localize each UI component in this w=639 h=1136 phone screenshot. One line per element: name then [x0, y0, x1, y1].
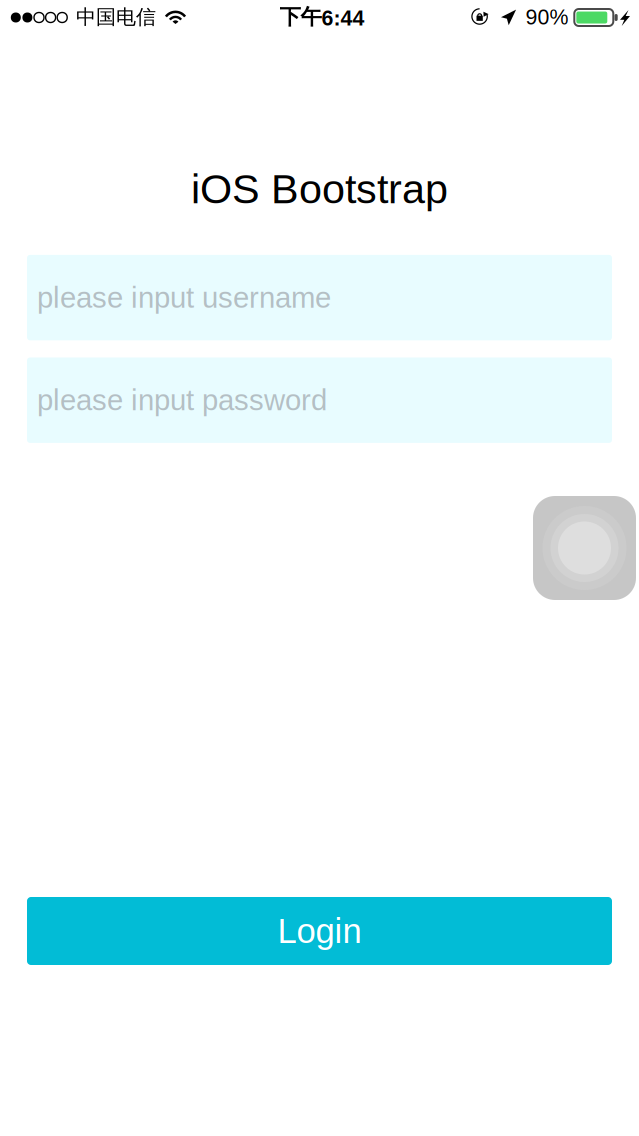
staticText: Login [277, 912, 361, 950]
button[interactable]: Loading [533, 496, 636, 600]
staticText: 下午6:44 [279, 4, 364, 30]
staticText: please input username [37, 281, 331, 314]
button[interactable]: please input password [27, 357, 612, 443]
button[interactable]: Login [27, 897, 612, 965]
staticText: 中国电信 [76, 4, 156, 30]
staticText: iOS Bootstrap [191, 166, 448, 212]
staticText: 90% [525, 5, 568, 29]
staticText: please input password [37, 384, 327, 417]
button[interactable]: please input username [27, 255, 612, 340]
